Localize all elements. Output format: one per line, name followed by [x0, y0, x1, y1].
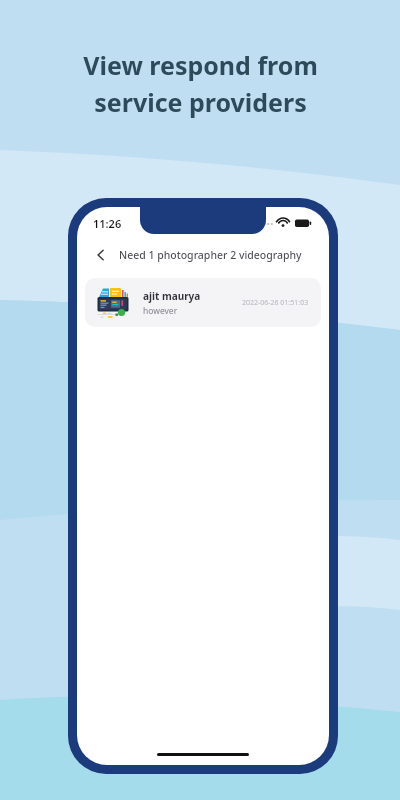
staticText: Need 1 photographer 2 videography	[119, 248, 302, 262]
staticText: service providers	[94, 85, 307, 119]
staticText: ajit maurya	[143, 289, 201, 303]
staticText: View respond from	[83, 48, 318, 82]
button[interactable]: Back	[91, 245, 111, 265]
staticText: 11:26	[93, 216, 122, 231]
staticText: however	[143, 305, 178, 317]
button[interactable]: ajit maurya	[85, 278, 321, 327]
staticText: 2022-06-26 01:51:03	[242, 298, 309, 308]
